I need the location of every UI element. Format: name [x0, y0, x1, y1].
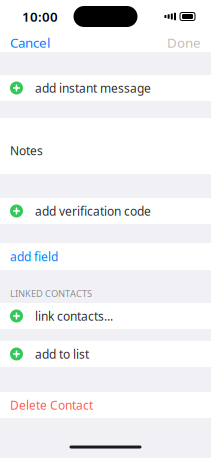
button[interactable]: Delete Contact: [0, 392, 211, 418]
button[interactable]: add verification code: [0, 198, 211, 224]
button[interactable]: add instant message: [0, 75, 211, 101]
staticText: LINKED CONTACTS: [10, 287, 92, 300]
staticText: Done: [167, 34, 201, 51]
staticText: link contacts...: [35, 308, 113, 324]
button[interactable]: Done: [167, 30, 211, 55]
staticText: Delete Contact: [10, 397, 93, 413]
button[interactable]: link contacts...: [0, 303, 211, 329]
staticText: Cancel: [10, 34, 50, 51]
staticText: Notes: [10, 142, 43, 158]
staticText: add instant message: [35, 80, 151, 96]
button[interactable]: Cancel: [0, 30, 50, 55]
staticText: add verification code: [35, 203, 151, 219]
staticText: add to list: [35, 346, 89, 362]
button[interactable]: add to list: [0, 341, 211, 367]
staticText: 10:00: [22, 8, 58, 25]
staticText: add field: [10, 248, 58, 264]
button[interactable]: add field: [0, 243, 211, 270]
